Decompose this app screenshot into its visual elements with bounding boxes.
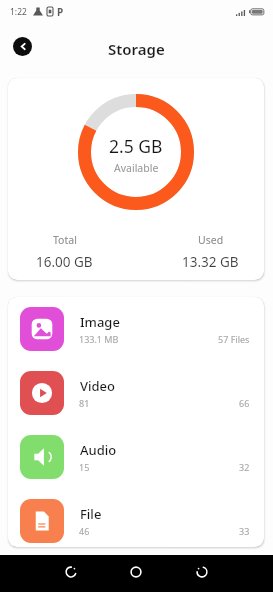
button[interactable]: Back: [182, 553, 222, 590]
staticText: 46: [79, 525, 90, 537]
staticText: 66: [239, 397, 250, 409]
button[interactable]: Image: [8, 297, 264, 361]
staticText: 15: [79, 461, 90, 473]
staticText: Video: [80, 377, 115, 395]
staticText: 33: [239, 525, 250, 537]
staticText: File: [80, 505, 102, 523]
staticText: 13.32 GB: [182, 253, 239, 271]
staticText: 2.5 GB: [109, 134, 163, 158]
staticText: 133.1 MB: [79, 333, 119, 345]
button[interactable]: Recents: [51, 553, 91, 590]
staticText: Used: [198, 233, 224, 247]
staticText: 16.00 GB: [36, 253, 93, 271]
button[interactable]: Audio: [8, 425, 264, 489]
button[interactable]: Video: [8, 361, 264, 425]
staticText: 32: [239, 461, 250, 473]
staticText: 57 Files: [218, 333, 250, 345]
button[interactable]: Home: [116, 553, 156, 590]
staticText: P: [57, 5, 64, 19]
staticText: Total: [53, 233, 77, 247]
staticText: 1:22: [10, 6, 27, 18]
staticText: Available: [114, 161, 159, 175]
staticText: Audio: [80, 441, 117, 459]
staticText: Storage: [108, 39, 165, 59]
staticText: Image: [80, 313, 120, 331]
staticText: 81: [79, 397, 90, 409]
button[interactable]: Back: [13, 37, 32, 56]
button[interactable]: File: [8, 489, 264, 547]
